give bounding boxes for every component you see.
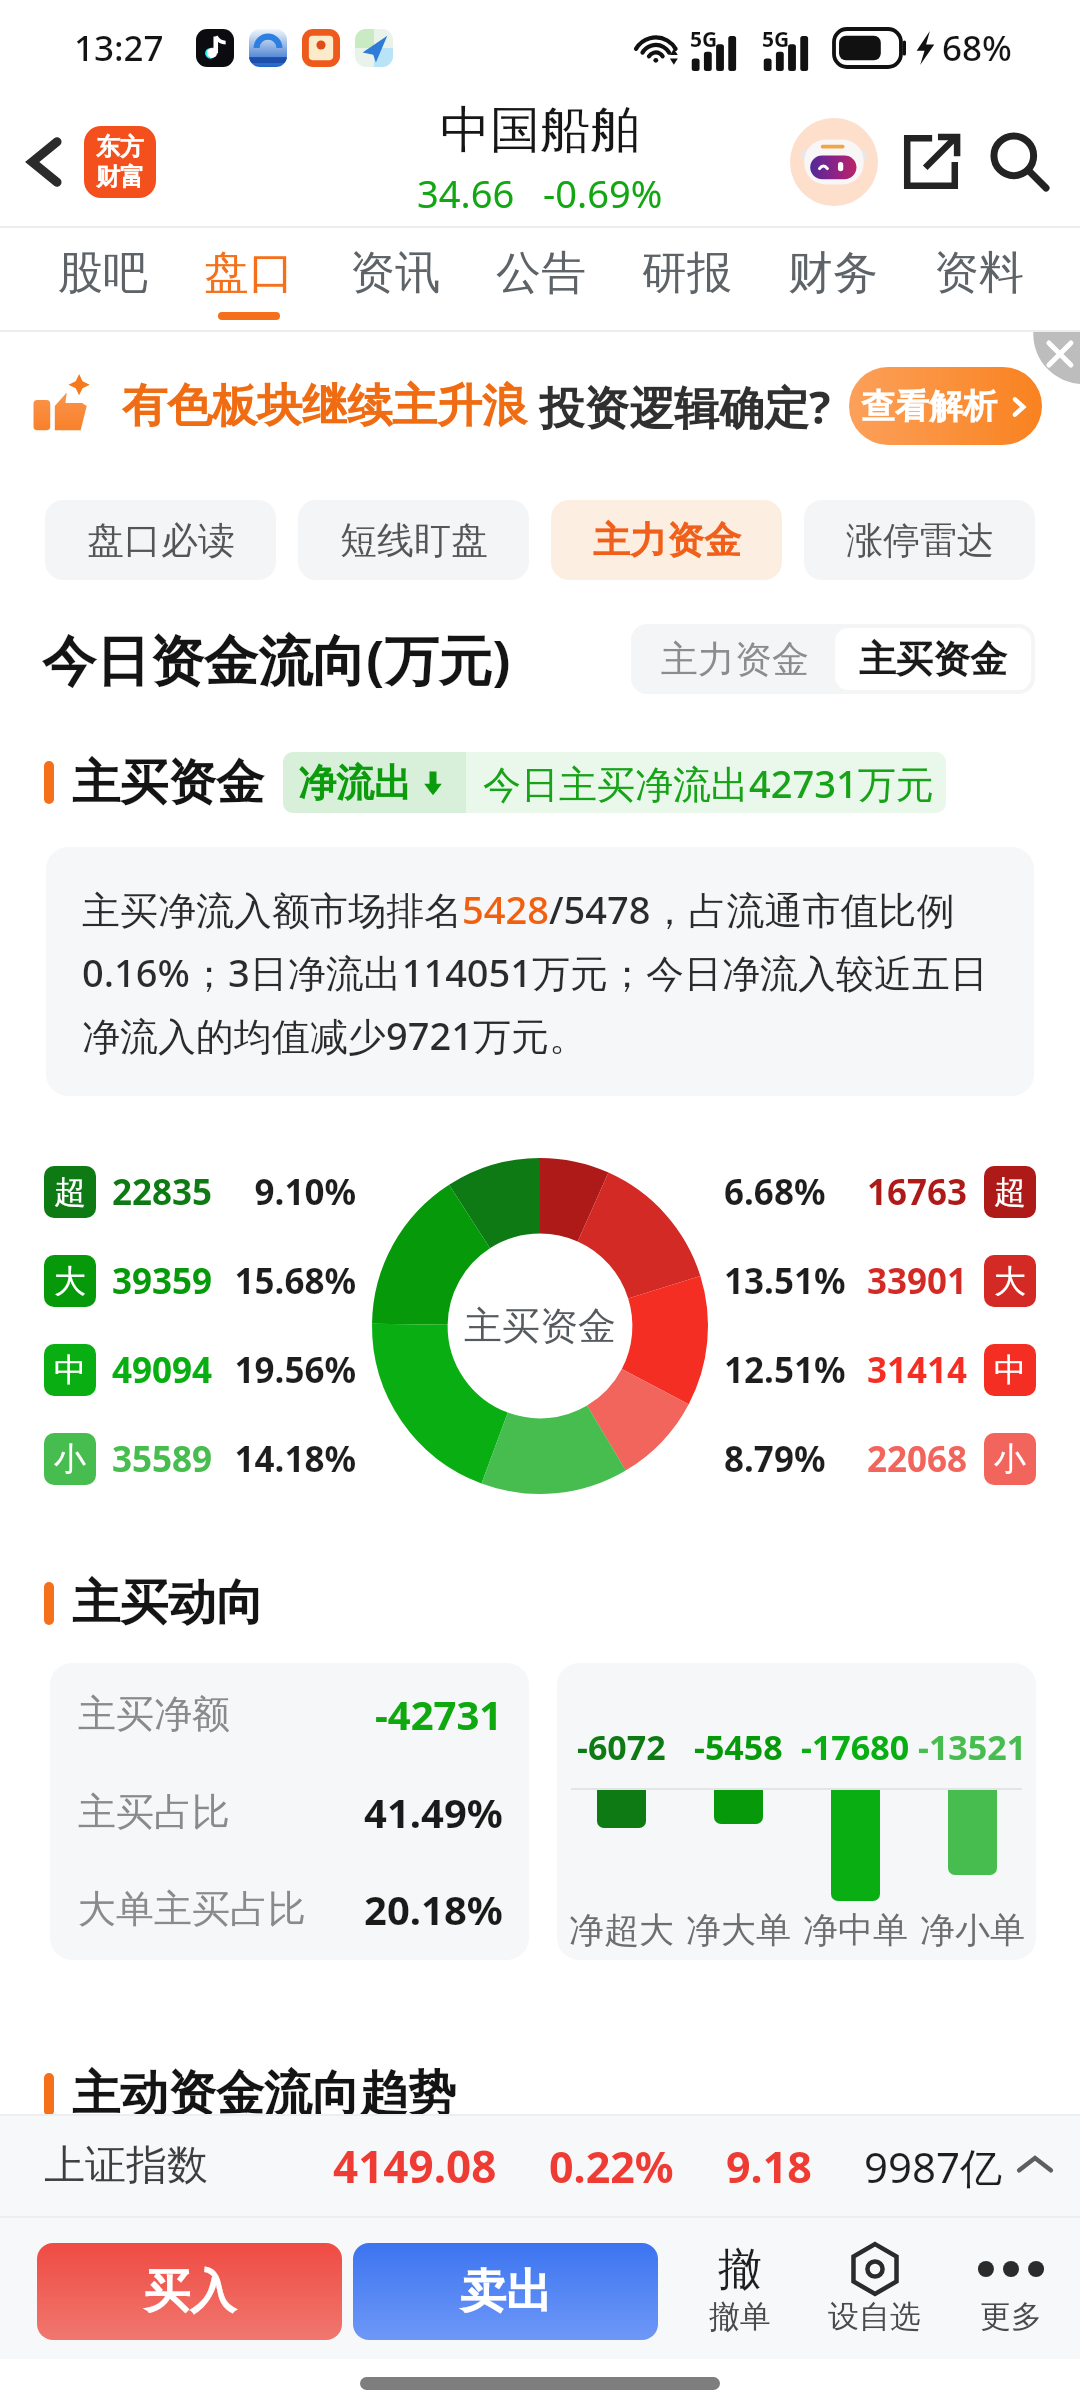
staticText: 41.49% xyxy=(364,1785,503,1839)
staticText: 有色板块继续主升浪 xyxy=(122,378,527,435)
staticText: 短线盯盘 xyxy=(340,517,488,564)
staticText: 主买动向 xyxy=(72,1573,264,1633)
staticText: 财富 xyxy=(96,162,144,192)
staticText: 净流出 xyxy=(298,759,412,807)
staticText: 68% xyxy=(942,24,1012,72)
staticText: 6.68% xyxy=(724,1168,826,1216)
button[interactable]: 研报 xyxy=(642,228,732,332)
staticText: 14.18% xyxy=(234,1435,356,1483)
staticText: 15.68% xyxy=(234,1257,356,1305)
staticText: 34.66 xyxy=(417,167,515,219)
staticText: 16763 xyxy=(867,1168,968,1216)
staticText: 资料 xyxy=(934,245,1024,302)
staticText: 大 xyxy=(54,1261,86,1301)
button[interactable]: 盘口必读 xyxy=(45,500,276,580)
button[interactable]: 财务 xyxy=(788,228,878,332)
staticText: 主动资金流向趋势 xyxy=(72,2064,456,2124)
staticText: 35589 xyxy=(112,1435,213,1483)
button[interactable]: Home xyxy=(84,126,156,198)
staticText: 主买资金 xyxy=(859,636,1007,683)
staticText: 净小单 xyxy=(920,1908,1025,1952)
staticText: 19.56% xyxy=(234,1346,356,1394)
staticText: 净超大 xyxy=(569,1908,674,1952)
button[interactable]: 公告 xyxy=(496,228,586,332)
staticText: 东方 xyxy=(96,132,144,162)
button[interactable]: 主买资金 xyxy=(835,628,1031,690)
staticText: 今日主买净流出42731万元 xyxy=(483,757,934,809)
button[interactable]: 查看解析 xyxy=(849,367,1042,445)
staticText: 资讯 xyxy=(350,245,440,302)
staticText: 卖出 xyxy=(460,2263,552,2321)
staticText: 中国船舶 xyxy=(440,99,640,162)
staticText: 主买净流入额市场排名5428/5478，占流通市值比例0.16%；3日净流出11… xyxy=(82,883,1006,1061)
button[interactable]: 买入 xyxy=(37,2243,342,2340)
staticText: 查看解析 xyxy=(861,385,997,428)
staticText: 22068 xyxy=(867,1435,968,1483)
button[interactable]: 短线盯盘 xyxy=(298,500,529,580)
staticText: 投资逻辑确定? xyxy=(539,376,831,437)
staticText: 设自选 xyxy=(828,2297,921,2336)
staticText: 0.22% xyxy=(549,2137,674,2196)
staticText: 小 xyxy=(994,1439,1026,1479)
staticText: 公告 xyxy=(496,245,586,302)
button[interactable]: Close banner xyxy=(998,332,1080,414)
staticText: -17680 xyxy=(801,1724,910,1770)
staticText: 主买净额 xyxy=(78,1690,230,1738)
staticText: 主买资金 xyxy=(72,753,264,813)
staticText: 9987亿 xyxy=(864,2138,1003,2195)
staticText: 大 xyxy=(994,1261,1026,1301)
button[interactable]: 卖出 xyxy=(353,2243,658,2340)
staticText: 主买资金 xyxy=(464,1302,616,1350)
staticText: 主力资金 xyxy=(661,636,809,683)
staticText: 财务 xyxy=(788,245,878,302)
staticText: 20.18% xyxy=(364,1882,503,1936)
staticText: 涨停雷达 xyxy=(846,517,994,564)
button[interactable]: 设自选 xyxy=(822,2241,927,2336)
staticText: -5458 xyxy=(694,1724,783,1770)
staticText: 13.51% xyxy=(724,1257,846,1305)
button[interactable]: Back xyxy=(8,124,84,200)
staticText: 5G xyxy=(690,25,718,54)
staticText: 超 xyxy=(54,1172,86,1212)
button[interactable]: Share xyxy=(890,121,972,203)
staticText: 盘口 xyxy=(204,245,294,302)
staticText: 撤 xyxy=(718,2242,762,2297)
button[interactable]: 更多 xyxy=(972,2241,1050,2336)
staticText: 小 xyxy=(54,1439,86,1479)
button[interactable]: 主力资金 xyxy=(635,628,835,690)
staticText: 中 xyxy=(54,1350,86,1390)
button[interactable]: 主力资金 xyxy=(551,500,782,580)
staticText: 主买占比 xyxy=(78,1788,230,1836)
staticText: 盘口必读 xyxy=(87,517,235,564)
staticText: 5G xyxy=(762,25,790,54)
button[interactable]: Search xyxy=(978,120,1062,204)
staticText: 39359 xyxy=(112,1257,213,1305)
button[interactable]: 资讯 xyxy=(350,228,440,332)
staticText: 22835 xyxy=(112,1168,213,1216)
button[interactable]: Expand index panel xyxy=(1004,2135,1066,2197)
staticText: 净中单 xyxy=(803,1908,908,1952)
staticText: 4149.08 xyxy=(333,2136,497,2196)
staticText: 9.18 xyxy=(726,2137,812,2196)
staticText: 大单主买占比 xyxy=(78,1885,306,1933)
staticText: -42731 xyxy=(375,1687,503,1741)
staticText: 31414 xyxy=(867,1346,968,1394)
staticText: 研报 xyxy=(642,245,732,302)
button[interactable]: 资料 xyxy=(934,228,1024,332)
button[interactable]: 涨停雷达 xyxy=(804,500,1035,580)
staticText: -0.69% xyxy=(543,167,663,219)
staticText: 股吧 xyxy=(58,245,148,302)
staticText: 中 xyxy=(994,1350,1026,1390)
staticText: 上证指数 xyxy=(44,2140,208,2192)
button[interactable]: 撤 xyxy=(703,2241,777,2336)
staticText: 买入 xyxy=(144,2263,236,2321)
staticText: 撤单 xyxy=(709,2297,771,2336)
staticText: 9.10% xyxy=(254,1168,356,1216)
button[interactable]: AI assistant xyxy=(790,118,878,206)
staticText: 33901 xyxy=(867,1257,968,1305)
staticText: 净大单 xyxy=(686,1908,791,1952)
staticText: 13:27 xyxy=(74,24,164,72)
staticText: 今日资金流向(万元) xyxy=(42,622,511,696)
button[interactable]: 股吧 xyxy=(58,228,148,332)
button[interactable]: 盘口 xyxy=(204,228,294,332)
